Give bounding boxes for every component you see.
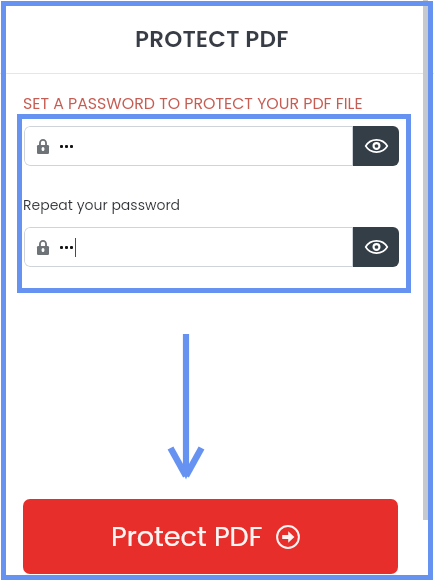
- staticText: SET A PASSWORD TO PROTECT YOUR PDF FILE: [23, 92, 363, 114]
- button[interactable]: Show password: [353, 126, 399, 166]
- staticText: Protect PDF: [111, 518, 263, 556]
- button[interactable]: Show password: [353, 227, 399, 267]
- button[interactable]: Show password: [24, 126, 399, 166]
- staticText: PROTECT PDF: [135, 23, 289, 55]
- button[interactable]: Protect PDF: [23, 499, 398, 574]
- button[interactable]: Show password: [24, 227, 399, 267]
- staticText: Repeat your password: [23, 195, 181, 215]
